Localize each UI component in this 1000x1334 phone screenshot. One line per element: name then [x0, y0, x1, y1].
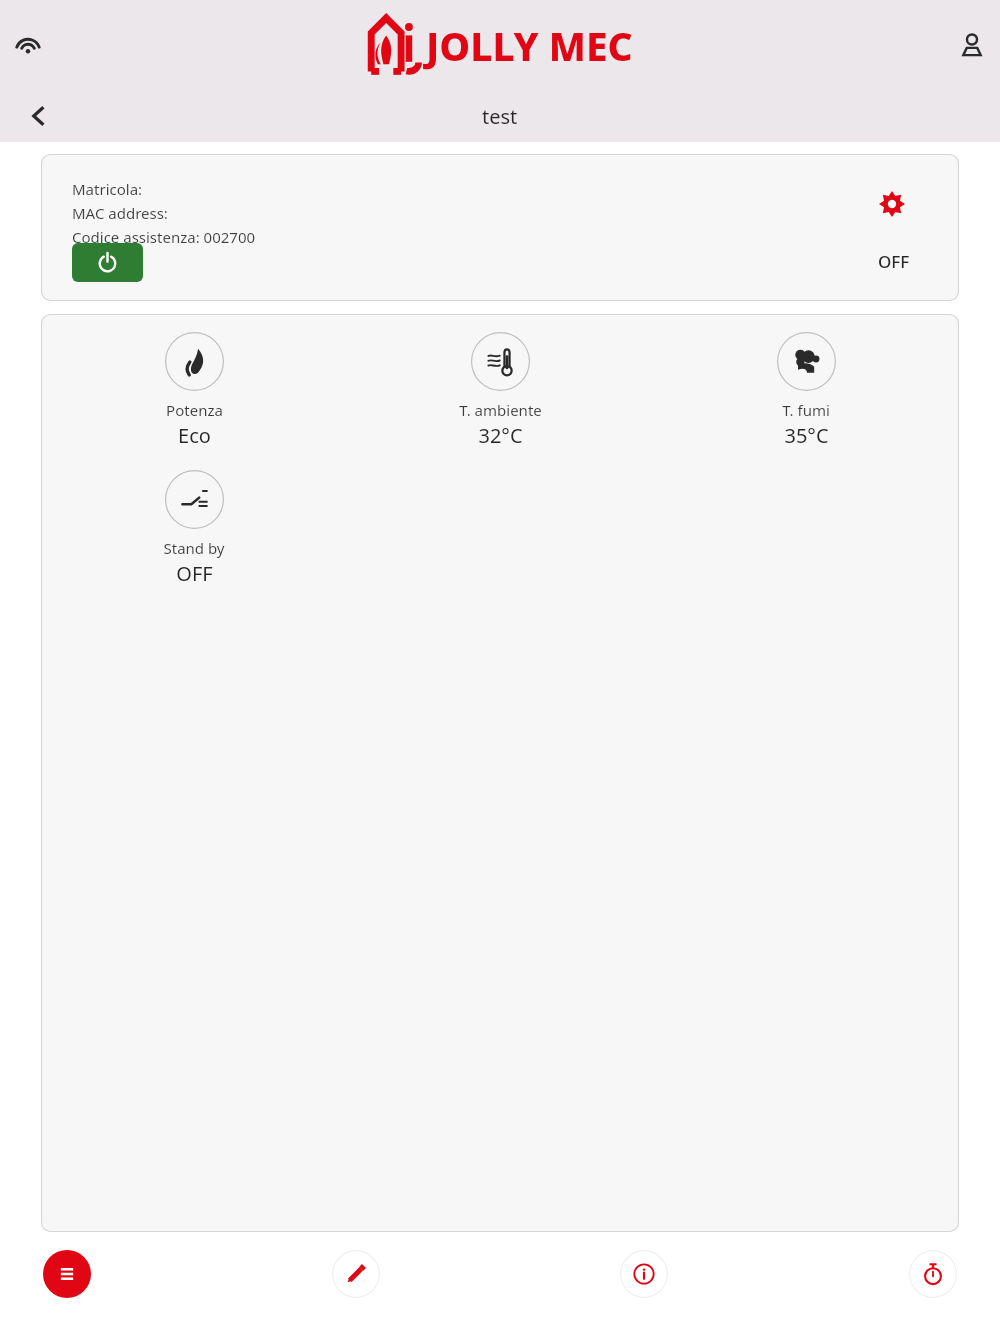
staticText: Codice assistenza: 002700 — [72, 227, 256, 247]
staticText: MAC address: — [72, 203, 168, 223]
button[interactable]: Edit — [332, 1250, 380, 1298]
staticText: 32°C — [478, 422, 523, 449]
staticText: Stand by — [163, 538, 225, 558]
button[interactable]: Settings — [875, 187, 909, 221]
staticText: T. ambiente — [459, 400, 542, 420]
button[interactable]: Account — [952, 25, 992, 65]
button[interactable]: T. fumi — [653, 332, 959, 449]
staticText: 35°C — [784, 422, 829, 449]
staticText: JOLLY MEC — [426, 19, 633, 72]
button[interactable]: Menu — [43, 1250, 91, 1298]
button[interactable]: Wi-Fi — [8, 25, 48, 65]
staticText: OFF — [878, 250, 910, 273]
button[interactable]: Power — [72, 243, 143, 282]
staticText: T. fumi — [782, 400, 830, 420]
staticText: Potenza — [166, 400, 223, 420]
button[interactable]: Stand by — [41, 470, 347, 587]
button[interactable]: Back — [16, 93, 62, 139]
button[interactable]: Potenza — [41, 332, 347, 449]
button[interactable]: Info — [620, 1250, 668, 1298]
button[interactable]: T. ambiente — [347, 332, 653, 449]
staticText: test — [482, 103, 518, 130]
staticText: OFF — [176, 560, 213, 587]
button[interactable]: Timer — [909, 1250, 957, 1298]
staticText: Eco — [178, 422, 211, 449]
staticText: Matricola: — [72, 179, 143, 199]
